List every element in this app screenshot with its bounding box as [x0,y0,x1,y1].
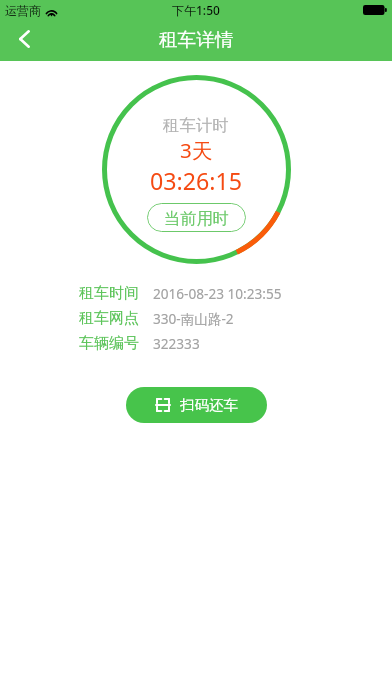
staticText: 3天 [180,136,213,164]
staticText: 下午1:50 [172,2,220,18]
staticText: 租车时间 [79,284,139,303]
staticText: 扫码还车 [180,396,238,414]
staticText: 03:26:15 [150,165,243,197]
staticText: 322333 [153,334,200,353]
staticText: 当前用时 [164,208,229,228]
staticText: 330-南山路-2 [153,309,234,328]
staticText: 运营商 [5,3,41,18]
staticText: 租车详情 [159,28,234,51]
button[interactable]: 扫码还车 [126,387,267,423]
staticText: 2016-08-23 10:23:55 [153,284,282,303]
staticText: 租车计时 [163,115,229,136]
staticText: 租车网点 [79,309,139,328]
button[interactable]: 当前用时 [147,203,246,232]
staticText: 车辆编号 [79,334,139,353]
button[interactable]: Back [2,18,46,59]
